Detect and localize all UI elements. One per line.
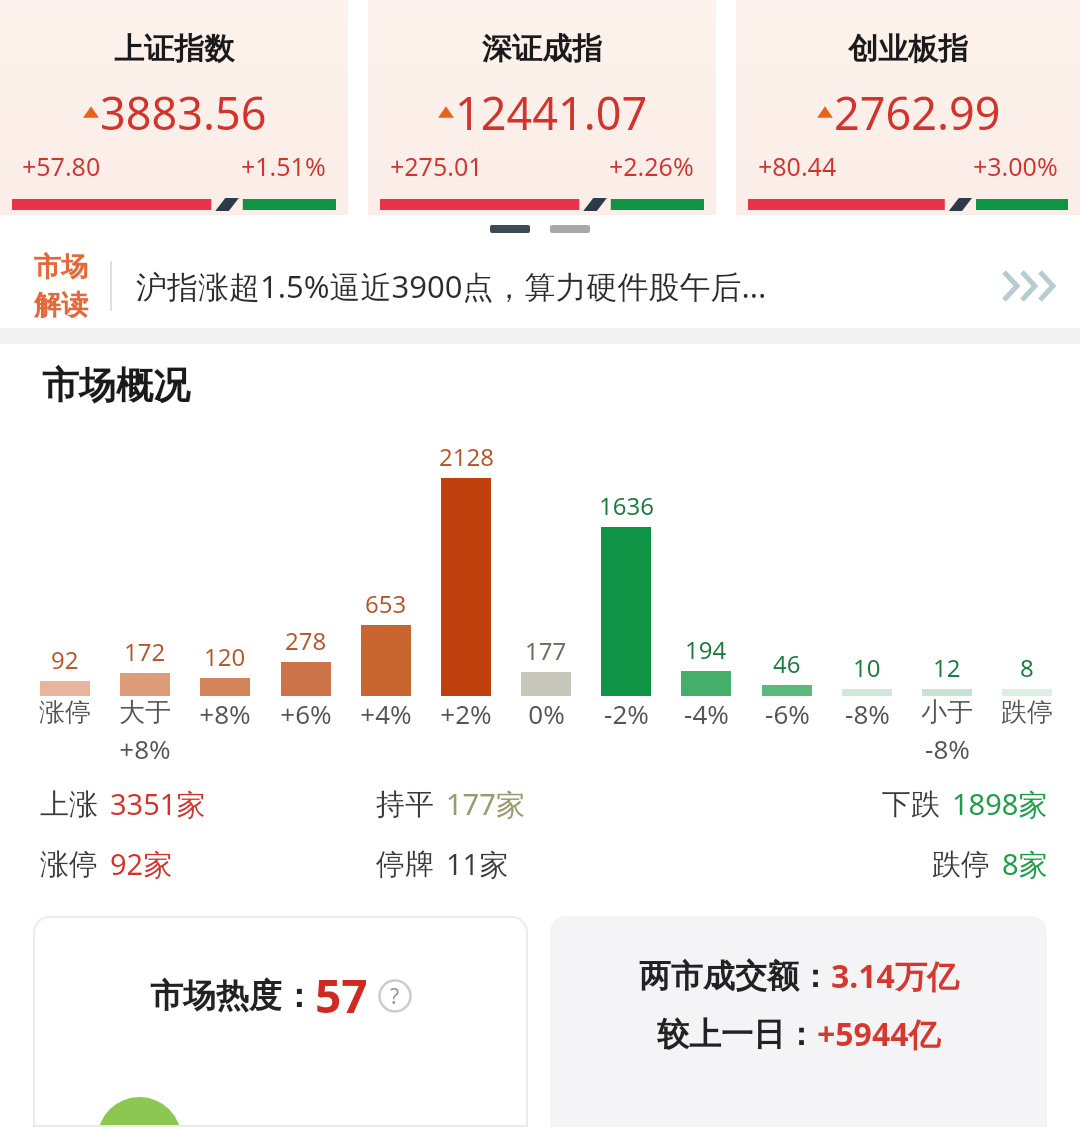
staticText: 市场热度： — [150, 975, 315, 1017]
other: Help — [378, 979, 412, 1013]
staticText: 跌停 — [932, 846, 990, 883]
staticText: 停牌 — [376, 846, 434, 883]
button[interactable]: 市场 — [0, 243, 1080, 328]
staticText: 120 — [204, 640, 246, 673]
staticText: 上涨 — [40, 786, 98, 823]
staticText: +3.00% — [973, 149, 1058, 183]
button[interactable]: 跌停 — [932, 844, 1048, 884]
button[interactable]: 上证指数 — [0, 0, 348, 215]
staticText: +5944亿 — [817, 1012, 941, 1056]
staticText: 8家 — [1002, 844, 1048, 884]
staticText: 市场概况 — [42, 362, 190, 409]
button[interactable]: 上涨 — [40, 784, 376, 824]
staticText: 跌停 — [1001, 696, 1053, 729]
staticText: +6% — [280, 696, 332, 731]
staticText: 194 — [685, 633, 727, 666]
staticText: 177 — [525, 634, 567, 667]
staticText: +4% — [360, 696, 412, 731]
staticText: 11家 — [446, 844, 509, 884]
staticText: 92 — [51, 643, 79, 676]
staticText: 8 — [1020, 651, 1034, 684]
button[interactable]: 持平 — [376, 784, 712, 824]
staticText: 10 — [853, 651, 881, 684]
staticText: -8% — [925, 731, 970, 766]
staticText: +8% — [199, 696, 251, 731]
staticText: 深证成指 — [368, 30, 716, 68]
other: More news — [998, 266, 1068, 306]
staticText: 1898家 — [952, 784, 1048, 824]
staticText: 两市成交额： — [639, 956, 831, 996]
staticText: 46 — [773, 647, 801, 680]
staticText: 12441.07 — [455, 82, 648, 143]
staticText: -2% — [604, 696, 649, 731]
staticText: 3.14万亿 — [831, 954, 959, 998]
staticText: ? — [390, 982, 400, 1011]
staticText: 小于 — [921, 696, 973, 729]
staticText: 较上一日： — [657, 1014, 817, 1054]
button[interactable]: 深证成指 — [368, 0, 716, 215]
staticText: -6% — [765, 696, 810, 731]
staticText: 92家 — [110, 844, 173, 884]
staticText: 2762.99 — [834, 82, 1001, 143]
staticText: 解读 — [34, 288, 88, 322]
staticText: 653 — [365, 587, 407, 620]
staticText: 177家 — [446, 784, 525, 824]
staticText: 57 — [315, 964, 368, 1027]
staticText: +2% — [440, 696, 492, 731]
staticText: +57.80 — [22, 149, 101, 183]
staticText: 0% — [528, 696, 565, 731]
staticText: 上证指数 — [0, 30, 348, 68]
staticText: 大于 — [119, 696, 171, 729]
staticText: +8% — [119, 731, 171, 766]
button[interactable]: 创业板指 — [736, 0, 1080, 215]
staticText: 沪指涨超1.5%逼近3900点，算力硬件股午后... — [136, 265, 998, 307]
staticText: 3351家 — [110, 784, 206, 824]
staticText: 市场 — [34, 250, 88, 284]
staticText: +80.44 — [758, 149, 837, 183]
staticText: 172 — [124, 635, 166, 668]
staticText: 下跌 — [882, 786, 940, 823]
button[interactable]: 两市成交额： — [550, 916, 1047, 1127]
staticText: 创业板指 — [736, 30, 1080, 68]
button[interactable]: 市场热度： — [33, 916, 528, 1127]
button[interactable]: 停牌 — [376, 844, 712, 884]
staticText: 涨停 — [40, 846, 98, 883]
staticText: 3883.56 — [100, 82, 267, 143]
staticText: -8% — [845, 696, 890, 731]
button[interactable]: 下跌 — [882, 784, 1048, 824]
button[interactable]: 涨停 — [40, 844, 376, 884]
staticText: 278 — [285, 624, 327, 657]
staticText: -4% — [684, 696, 729, 731]
staticText: 1636 — [599, 489, 654, 522]
staticText: +1.51% — [241, 149, 326, 183]
staticText: +2.26% — [609, 149, 694, 183]
staticText: 12 — [933, 651, 961, 684]
staticText: 持平 — [376, 786, 434, 823]
staticText: +275.01 — [390, 149, 483, 183]
staticText: 涨停 — [39, 696, 91, 729]
staticText: 2128 — [439, 440, 494, 473]
